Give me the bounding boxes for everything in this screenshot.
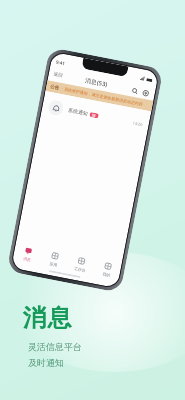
staticText: 灵活信息平台	[28, 341, 82, 352]
staticText: 公告	[50, 84, 60, 91]
staticText: 消息	[22, 256, 31, 262]
button[interactable]: 应用	[38, 244, 70, 273]
staticText: 9:41	[56, 59, 66, 66]
staticText: 系统通知	[68, 107, 88, 116]
button[interactable]: 公告	[45, 80, 153, 112]
staticText: · 系统维护通知，请注意查收最新消息动态内容	[62, 86, 144, 107]
staticText: 53	[91, 112, 97, 118]
button[interactable]: 工作台	[65, 249, 96, 278]
staticText: 返回	[53, 71, 63, 79]
button[interactable]: Search	[129, 85, 140, 96]
staticText: 消息	[22, 303, 72, 333]
staticText: 我的	[102, 271, 111, 278]
staticText: 工作台	[74, 266, 86, 273]
button[interactable]: More	[140, 87, 151, 98]
button[interactable]: 系统通知	[41, 94, 151, 136]
staticText: 14:20	[132, 120, 143, 127]
staticText: 应用	[49, 261, 58, 267]
staticText: 及时通知	[28, 357, 64, 368]
button[interactable]: 消息	[12, 239, 43, 268]
button[interactable]: 我的	[91, 255, 123, 283]
staticText: 消息(53)	[84, 76, 108, 89]
